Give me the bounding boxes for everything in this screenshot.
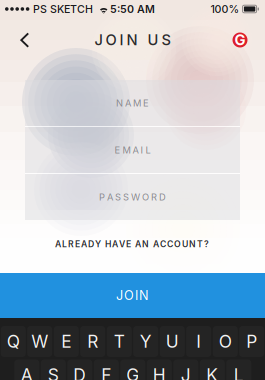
button[interactable]: W	[27, 326, 52, 357]
staticText: 100%	[210, 2, 239, 15]
button[interactable]: L	[226, 359, 251, 380]
button[interactable]: A	[14, 359, 39, 380]
staticText: O	[219, 331, 232, 352]
staticText: W	[31, 331, 48, 352]
button[interactable]: F	[94, 359, 119, 380]
button[interactable]: Q	[1, 326, 26, 357]
button[interactable]: O	[213, 326, 238, 357]
button[interactable]: E M A I L	[25, 127, 240, 173]
staticText: K	[206, 364, 218, 380]
staticText: Q	[7, 331, 20, 352]
staticText: A	[21, 364, 33, 380]
button[interactable]: P A S S W O R D	[25, 174, 240, 220]
staticText: I	[196, 331, 201, 352]
staticText: 5:50 AM	[110, 2, 155, 15]
button[interactable]: J O I N	[0, 273, 265, 318]
staticText: H	[153, 364, 166, 380]
staticText: U	[166, 331, 179, 352]
staticText: J O I N U S	[94, 31, 170, 49]
button[interactable]: D	[67, 359, 92, 380]
staticText: N A M E	[116, 97, 149, 109]
button[interactable]: Y	[133, 326, 158, 357]
staticText: L	[234, 364, 244, 380]
button[interactable]: G	[120, 359, 145, 380]
button[interactable]: R	[80, 326, 105, 357]
staticText: PS SKETCH	[33, 2, 93, 15]
staticText: S	[48, 364, 59, 380]
button[interactable]: J	[173, 359, 198, 380]
staticText: Y	[140, 331, 152, 352]
staticText: E M A I L	[114, 144, 150, 156]
staticText: A L R E A D Y H A V E A N A C C O U N T …	[55, 239, 209, 249]
button[interactable]: T	[107, 326, 132, 357]
staticText: G	[234, 31, 245, 49]
staticText: J O I N	[116, 288, 149, 303]
staticText: E	[61, 331, 71, 352]
staticText: G	[126, 364, 139, 380]
button[interactable]: H	[147, 359, 172, 380]
button[interactable]: K	[200, 359, 225, 380]
button[interactable]: N A M E	[25, 80, 240, 126]
button[interactable]: U	[160, 326, 185, 357]
button[interactable]: Back	[6, 21, 44, 59]
staticText: D	[73, 364, 86, 380]
button[interactable]: Sign in with Google	[221, 21, 259, 59]
button[interactable]: E	[54, 326, 79, 357]
staticText: P	[246, 331, 257, 352]
staticText: R	[87, 331, 98, 352]
button[interactable]: S	[41, 359, 66, 380]
staticText: T	[114, 331, 125, 352]
button[interactable]: I	[186, 326, 211, 357]
staticText: J	[181, 364, 191, 380]
staticText: P A S S W O R D	[99, 191, 166, 203]
button[interactable]: P	[239, 326, 264, 357]
button[interactable]: A L R E A D Y H A V E A N A C C O U N T …	[32, 237, 232, 251]
staticText: F	[101, 364, 111, 380]
